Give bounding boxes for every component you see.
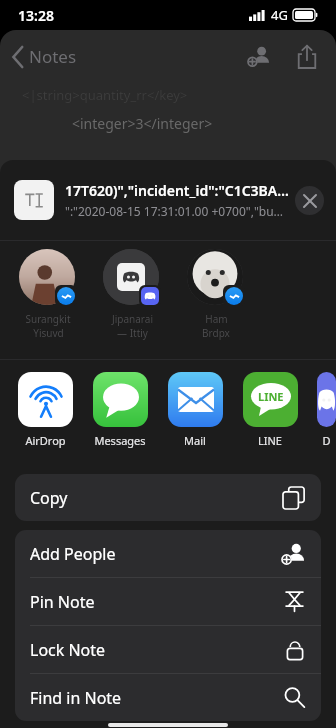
button[interactable]: Add People — [15, 530, 321, 577]
staticText: Ham — [205, 312, 228, 326]
button[interactable]: AirDrop — [17, 372, 73, 448]
staticText: Jipanarai — [112, 312, 153, 326]
button[interactable]: Add People — [242, 39, 276, 73]
staticText: <key>com.apple.coreanimation.updaterat — [28, 193, 284, 211]
button[interactable]: Pin Note — [15, 578, 321, 625]
staticText: Messages — [94, 433, 146, 448]
staticText: LINE — [258, 389, 284, 404]
button[interactable]: Ham — [185, 249, 247, 340]
staticText: <key>com.apple.coreanimation.updaterat — [28, 157, 284, 175]
button[interactable]: Surangkit — [17, 249, 79, 340]
staticText: Find in Note — [30, 687, 122, 709]
staticText: <integer>3</integer> — [72, 114, 213, 133]
staticText: Copy — [30, 487, 68, 509]
staticText: Brdpx — [202, 326, 230, 340]
button[interactable]: LINE — [242, 372, 298, 448]
button[interactable]: Share — [290, 39, 324, 73]
button[interactable]: Messages — [92, 372, 148, 448]
staticText: 13:28 — [18, 6, 54, 25]
staticText: D — [322, 433, 331, 448]
staticText: <|string>quantity_rr</key> — [22, 86, 188, 104]
staticText: 17T620)","incident_id":"C1C3BA… — [65, 181, 289, 200]
staticText: 4G — [271, 6, 288, 24]
button[interactable]: Close — [295, 186, 324, 215]
button[interactable]: Jipanarai — [101, 249, 163, 340]
staticText: Mail — [184, 433, 206, 448]
button[interactable]: Find in Note — [15, 674, 321, 721]
button[interactable]: Mail — [167, 372, 223, 448]
staticText: Pin Note — [30, 591, 95, 613]
staticText: Add People — [30, 543, 116, 565]
staticText: ":"2020-08-15 17:31:01.00 +0700","bug… — [65, 203, 289, 219]
button[interactable]: Lock Note — [15, 626, 321, 673]
button[interactable]: D — [317, 372, 336, 448]
button[interactable]: Notes — [12, 45, 83, 68]
staticText: Notes — [29, 45, 77, 68]
staticText: Yisuvd — [33, 326, 64, 340]
staticText: LINE — [258, 433, 282, 448]
staticText: AirDrop — [25, 433, 66, 448]
button[interactable]: Copy — [15, 474, 321, 521]
staticText: Lock Note — [30, 639, 106, 661]
staticText: Surangkit — [25, 312, 71, 326]
staticText: — Ittiy — [117, 326, 148, 340]
